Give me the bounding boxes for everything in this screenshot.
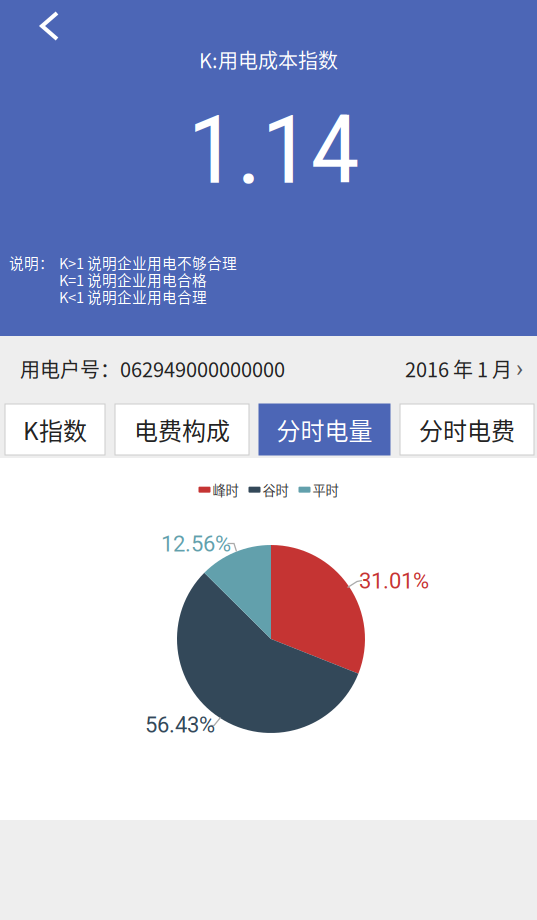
- staticText: 峰时: [212, 480, 238, 499]
- staticText: ›: [516, 354, 523, 382]
- staticText: K=1 说明企业用电合格: [59, 269, 207, 290]
- staticText: 56.43%: [145, 712, 215, 738]
- staticText: K>1 说明企业用电不够合理: [59, 252, 237, 273]
- staticText: 1.14: [187, 95, 359, 206]
- staticText: 2016 年 1 月: [405, 354, 512, 383]
- button[interactable]: Back: [0, 0, 77, 55]
- button[interactable]: 分时电量: [259, 404, 390, 455]
- staticText: 谷时: [262, 480, 288, 499]
- staticText: 31.01%: [359, 568, 429, 594]
- staticText: K指数: [23, 412, 87, 447]
- staticText: 分时电量: [276, 412, 372, 447]
- staticText: 说明：: [9, 252, 54, 273]
- staticText: 电费构成: [134, 412, 230, 447]
- button[interactable]: 电费构成: [115, 404, 249, 455]
- staticText: 分时电费: [419, 412, 515, 447]
- button[interactable]: K指数: [5, 404, 105, 455]
- staticText: 用电户号：062949000000000: [20, 354, 285, 383]
- button[interactable]: 分时电费: [400, 404, 534, 455]
- staticText: 平时: [312, 480, 338, 499]
- button[interactable]: 2016 年 1 月: [405, 346, 537, 391]
- staticText: 12.56%: [161, 531, 231, 557]
- staticText: K:用电成本指数: [199, 45, 338, 74]
- staticText: K<1 说明企业用电合理: [59, 286, 207, 307]
